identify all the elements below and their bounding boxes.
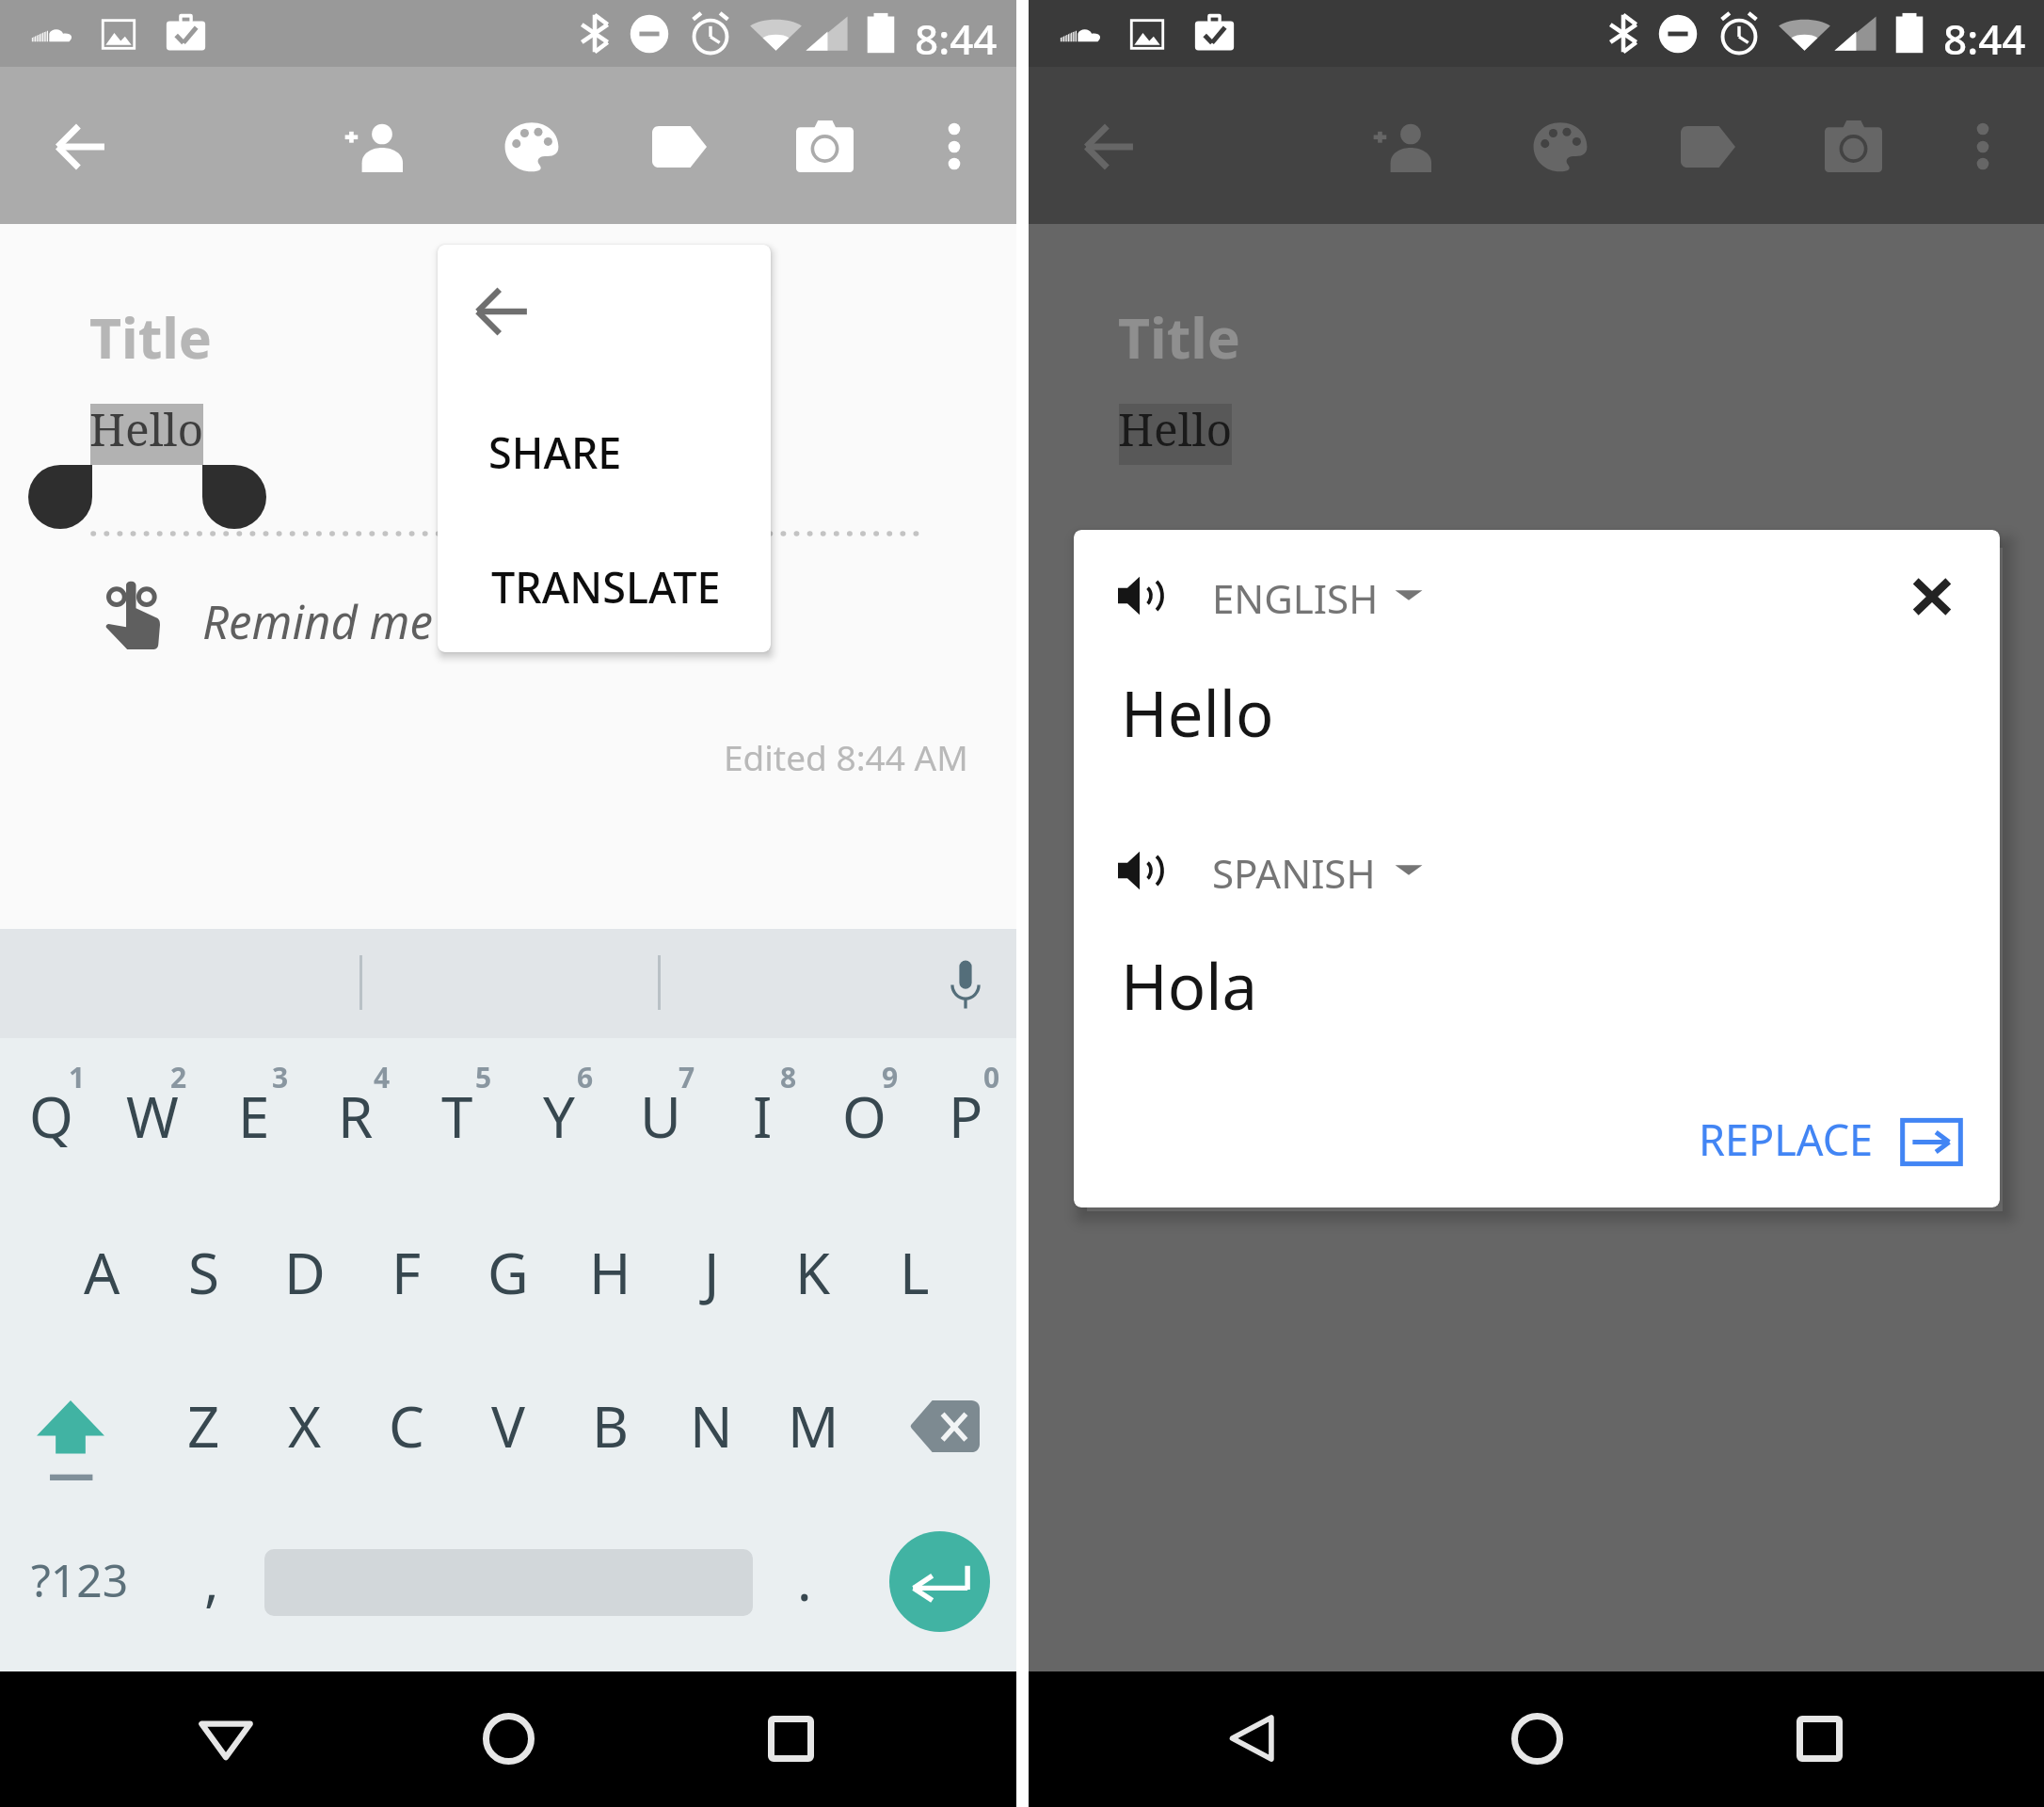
button[interactable]: V [457, 1358, 559, 1494]
button[interactable]: Add person [327, 100, 421, 194]
staticText: F [391, 1234, 422, 1311]
staticText: Hello [1121, 669, 1274, 755]
staticText: J [704, 1234, 720, 1311]
button[interactable]: Home [1485, 1687, 1589, 1790]
button[interactable]: Back [438, 245, 771, 376]
button[interactable]: Camera [777, 100, 871, 194]
staticText: O [842, 1078, 886, 1155]
staticText: 5 [475, 1058, 492, 1095]
staticText: S [188, 1234, 219, 1311]
button[interactable]: Back [33, 100, 127, 194]
staticText: Remind me [1231, 590, 1461, 653]
staticText: ENGLISH [1212, 571, 1379, 625]
button[interactable]: N [661, 1358, 762, 1494]
staticText: 1 [69, 1058, 86, 1095]
button[interactable]: U [610, 1049, 711, 1182]
staticText: SPANISH [1212, 846, 1376, 900]
staticText: C [389, 1387, 424, 1464]
button[interactable]: S [152, 1205, 254, 1340]
button[interactable]: Play Spanish [1106, 839, 1175, 908]
button[interactable]: Recents [739, 1687, 842, 1790]
button[interactable]: Change color [485, 100, 579, 194]
button[interactable]: Back [1062, 100, 1156, 194]
staticText: Y [543, 1078, 575, 1155]
staticText: Hello [89, 398, 204, 459]
button[interactable]: Backspace [864, 1358, 1016, 1494]
button[interactable]: Close [1891, 554, 1973, 637]
button[interactable]: Add person [1355, 100, 1449, 194]
staticText: D [284, 1234, 326, 1311]
button[interactable]: Space [264, 1549, 753, 1616]
button[interactable]: D [254, 1205, 356, 1340]
button[interactable]: More options [1936, 100, 2030, 194]
button[interactable]: G [457, 1205, 559, 1340]
staticText: 7 [679, 1058, 695, 1095]
button[interactable]: Recents [1767, 1687, 1871, 1790]
button[interactable]: M [762, 1358, 864, 1494]
button[interactable]: Z [152, 1358, 254, 1494]
button[interactable]: Q [0, 1049, 102, 1182]
button[interactable]: K [762, 1205, 864, 1340]
staticText: 4 [374, 1058, 391, 1095]
button[interactable]: F [356, 1205, 457, 1340]
button[interactable]: Camera [1806, 100, 1900, 194]
button[interactable]: Voice input [923, 944, 1008, 1029]
button[interactable]: P [915, 1049, 1016, 1182]
staticText: 9 [882, 1058, 899, 1095]
staticText: W [126, 1078, 179, 1155]
button[interactable]: J [661, 1205, 762, 1340]
button[interactable]: , [160, 1511, 263, 1647]
staticText: P [949, 1078, 983, 1155]
button[interactable] [438, 514, 771, 652]
staticText: M [788, 1387, 839, 1464]
staticText: L [900, 1234, 930, 1311]
button[interactable]: E [203, 1049, 305, 1182]
staticText: 2 [170, 1058, 187, 1095]
button[interactable]: B [559, 1358, 661, 1494]
staticText: Edited 8:44 AM [724, 733, 968, 780]
button[interactable]: Y [508, 1049, 610, 1182]
button[interactable]: C [356, 1358, 457, 1494]
button[interactable]: Back [174, 1687, 278, 1790]
button[interactable]: X [254, 1358, 356, 1494]
staticText: Title [1118, 299, 1241, 375]
staticText: 6 [577, 1058, 594, 1095]
button[interactable]: Shift [0, 1358, 152, 1494]
button[interactable]: Enter [889, 1531, 990, 1632]
staticText: . [797, 1543, 812, 1617]
staticText: X [288, 1387, 322, 1464]
staticText: 8:44 [1943, 10, 2026, 67]
button[interactable]: Label [631, 100, 726, 194]
staticText: E [238, 1078, 270, 1155]
button[interactable]: Back [1203, 1687, 1306, 1790]
button[interactable] [1676, 1099, 1977, 1184]
staticText: A [84, 1234, 120, 1311]
staticText: B [592, 1387, 629, 1464]
button[interactable]: L [864, 1205, 966, 1340]
button[interactable]: O [813, 1049, 915, 1182]
button[interactable] [438, 376, 771, 514]
staticText: H [589, 1234, 631, 1311]
staticText: Remind me [202, 590, 433, 653]
staticText: U [640, 1078, 681, 1155]
staticText: Hello [1118, 398, 1233, 459]
staticText: TRANSLATE [491, 558, 721, 616]
button[interactable]: . [753, 1511, 856, 1647]
button[interactable] [1196, 833, 1441, 908]
button[interactable]: A [51, 1205, 152, 1340]
staticText: 3 [272, 1058, 289, 1095]
button[interactable]: Play English [1106, 564, 1175, 633]
button[interactable]: I [711, 1049, 813, 1182]
button[interactable]: Label [1660, 100, 1754, 194]
staticText: I [753, 1078, 773, 1155]
button[interactable] [1196, 558, 1441, 633]
staticText: Q [29, 1078, 73, 1155]
button[interactable]: T [407, 1049, 508, 1182]
button[interactable]: ?123 [0, 1511, 160, 1647]
button[interactable]: H [559, 1205, 661, 1340]
button[interactable]: W [102, 1049, 203, 1182]
button[interactable]: R [305, 1049, 407, 1182]
button[interactable]: Change color [1513, 100, 1607, 194]
button[interactable]: Home [456, 1687, 560, 1790]
button[interactable]: More options [907, 100, 1001, 194]
